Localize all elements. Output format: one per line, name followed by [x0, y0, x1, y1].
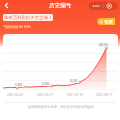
staticText: 2021-06-17	[37, 93, 54, 97]
button[interactable]: 销量	[99, 18, 113, 25]
staticText: 98.2%	[99, 43, 108, 47]
staticText: 2021-07-10	[67, 93, 84, 97]
staticText: 2021-06-30	[7, 93, 24, 97]
staticText: *该楼盘摇率100%	[3, 24, 31, 29]
staticText: 历史编号	[49, 2, 72, 9]
button[interactable]: More options	[89, 2, 117, 10]
staticText: 1.8%	[15, 83, 23, 87]
staticText: 地铁万科彩虹天空之城	[4, 15, 48, 21]
staticText: 2.3%	[42, 82, 50, 86]
staticText: 销量	[104, 19, 113, 25]
staticText: 2021-08-17	[96, 93, 113, 97]
button[interactable]: 地铁万科彩虹天空之城	[4, 14, 52, 21]
button[interactable]: Back	[1, 0, 12, 11]
staticText: 3.5%	[70, 79, 78, 83]
staticText: 该房源的摇号中签率，统计自开盘至今的数据	[3, 105, 118, 109]
